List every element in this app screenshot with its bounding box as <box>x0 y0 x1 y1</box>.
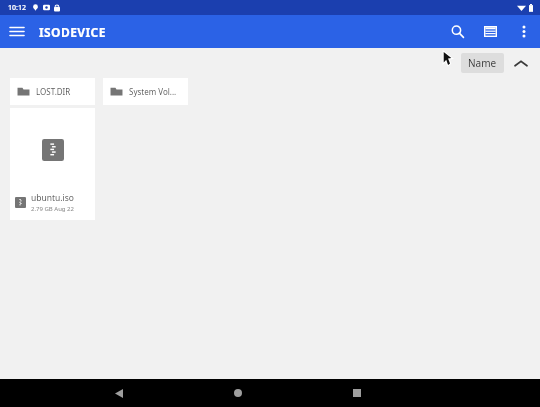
button[interactable]: System Vol... <box>103 78 188 105</box>
staticText: 10:12 <box>8 3 26 13</box>
button[interactable]: Navigation menu <box>0 15 33 48</box>
button[interactable]: View mode <box>474 15 507 48</box>
button[interactable]: Back <box>105 379 133 407</box>
button[interactable]: Name <box>461 53 504 73</box>
staticText: Name <box>468 56 497 70</box>
staticText: 2.79 GB Aug 22 <box>31 205 74 213</box>
staticText: ISODEVICE <box>39 24 106 40</box>
button[interactable]: LOST.DIR <box>10 78 95 105</box>
button[interactable]: Sort ascending <box>510 52 532 74</box>
button[interactable]: Recents <box>343 379 371 407</box>
staticText: LOST.DIR <box>36 86 71 97</box>
button[interactable]: Home <box>224 379 252 407</box>
staticText: System Vol... <box>129 86 177 97</box>
button[interactable]: Search <box>441 15 474 48</box>
button[interactable]: More options <box>507 15 540 48</box>
button[interactable]: ubuntu.iso <box>10 108 95 220</box>
staticText: ubuntu.iso <box>31 192 74 204</box>
